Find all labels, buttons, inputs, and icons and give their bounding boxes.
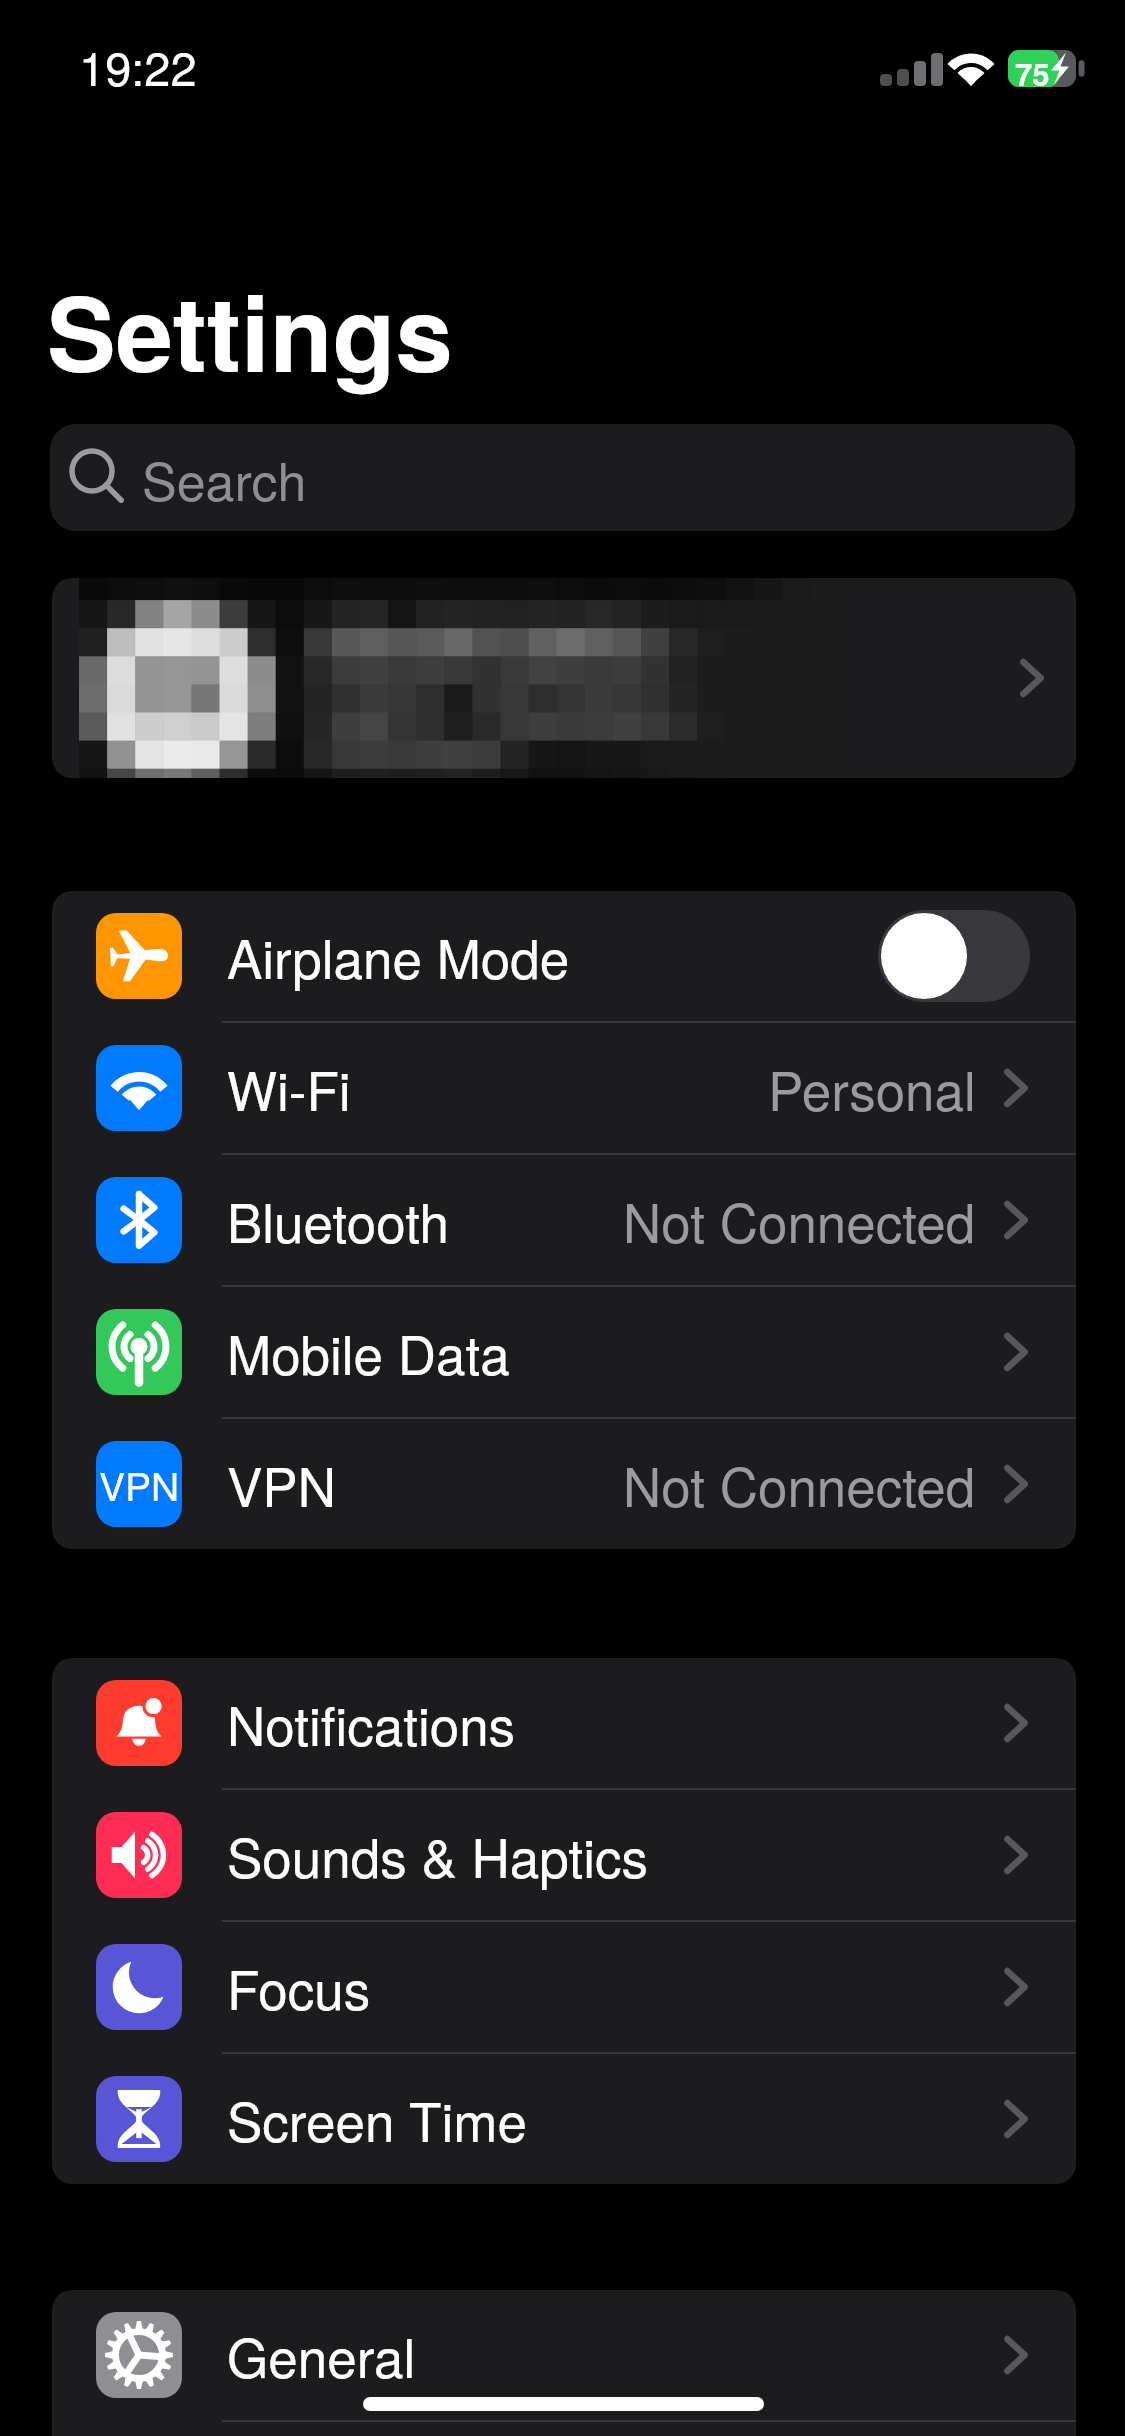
- staticText: 19:22: [79, 32, 197, 99]
- button[interactable]: Mobile Data: [52, 1287, 1076, 1417]
- button[interactable]: Search: [50, 424, 1075, 531]
- staticText: General: [227, 2317, 416, 2393]
- staticText: 75: [1015, 51, 1050, 95]
- button[interactable]: Sounds & Haptics: [52, 1790, 1076, 1920]
- staticText: Search: [142, 441, 307, 515]
- staticText: Airplane Mode: [227, 918, 570, 994]
- button[interactable]: Airplane Mode: [52, 891, 1076, 1021]
- button[interactable]: Airplane Mode toggle: [878, 910, 1030, 1002]
- staticText: Notifications: [227, 1685, 516, 1761]
- button[interactable]: Bluetooth: [52, 1155, 1076, 1285]
- button[interactable]: Screen Time: [52, 2054, 1076, 2184]
- button[interactable]: Apple Account: [52, 578, 1076, 778]
- staticText: Settings: [47, 256, 453, 403]
- button[interactable]: Focus: [52, 1922, 1076, 2052]
- staticText: Personal: [768, 1050, 976, 1126]
- staticText: VPN: [227, 1446, 336, 1522]
- staticText: Sounds & Haptics: [227, 1817, 648, 1893]
- button[interactable]: Wi-Fi: [52, 1023, 1076, 1153]
- button[interactable]: VPN: [52, 1419, 1076, 1549]
- staticText: Mobile Data: [227, 1314, 510, 1390]
- staticText: Bluetooth: [227, 1182, 450, 1258]
- staticText: Not Connected: [623, 1446, 976, 1522]
- button[interactable]: General: [52, 2290, 1076, 2420]
- button[interactable]: Notifications: [52, 1658, 1076, 1788]
- staticText: VPN: [99, 1456, 180, 1512]
- staticText: Not Connected: [623, 1182, 976, 1258]
- staticText: Wi-Fi: [227, 1050, 351, 1126]
- staticText: Focus: [227, 1949, 371, 2025]
- staticText: Screen Time: [227, 2081, 527, 2157]
